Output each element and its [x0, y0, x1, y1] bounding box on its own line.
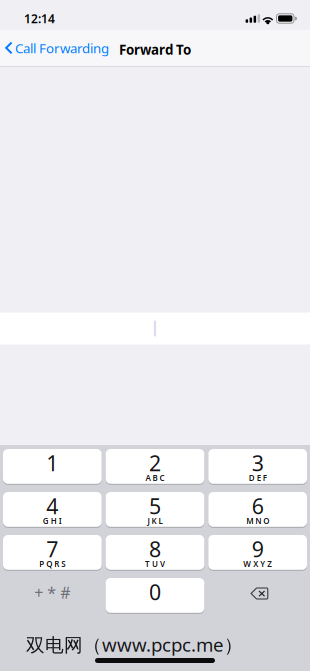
staticText: 4	[46, 492, 58, 520]
button[interactable]: 2	[106, 449, 204, 485]
button[interactable]: 4	[3, 492, 102, 528]
staticText: T U V	[145, 559, 165, 569]
staticText: 2	[149, 449, 161, 477]
staticText: D E F	[249, 473, 267, 483]
button[interactable]: 7	[3, 535, 102, 571]
button[interactable]: 9	[208, 535, 307, 571]
staticText: 6	[252, 492, 264, 520]
staticText: 3	[252, 449, 264, 477]
staticText: G H I	[43, 516, 62, 526]
staticText: 8	[149, 535, 161, 563]
staticText: A B C	[145, 473, 164, 483]
button[interactable]: 3	[208, 449, 307, 485]
staticText: 7	[46, 535, 58, 563]
staticText: 0	[149, 578, 161, 606]
staticText: M N O	[246, 516, 269, 526]
staticText: 12:14	[24, 10, 55, 26]
button[interactable]: Call Forwarding	[0, 36, 109, 60]
staticText: 5	[149, 492, 161, 520]
staticText: J K L	[147, 516, 162, 526]
button[interactable]: 1	[3, 449, 102, 485]
staticText: P Q R S	[39, 559, 65, 569]
staticText: Forward To	[119, 41, 191, 58]
staticText: Call Forwarding	[15, 39, 109, 57]
staticText: 1	[46, 449, 58, 477]
staticText: 双电网（www.pcpc.me）	[26, 632, 243, 657]
staticText: W X Y Z	[243, 559, 272, 569]
staticText: + * #	[34, 582, 70, 603]
button[interactable]: 5	[106, 492, 204, 528]
button[interactable]: 6	[208, 492, 307, 528]
button[interactable]: 8	[106, 535, 204, 571]
button[interactable]: + * #	[3, 578, 102, 614]
button[interactable]: Delete	[208, 578, 307, 614]
button[interactable]: 0	[106, 578, 204, 614]
staticText: 9	[252, 535, 264, 563]
